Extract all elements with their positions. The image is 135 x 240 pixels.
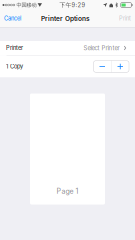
button[interactable]: Decrease number of copies — [93, 61, 111, 72]
button[interactable]: Printer — [0, 41, 135, 55]
staticText: 1 Copy — [6, 63, 23, 70]
staticText: 中国移动 — [16, 2, 36, 8]
button[interactable]: Increase number of copies — [111, 61, 129, 72]
button[interactable]: Print — [115, 10, 135, 27]
staticText: Page 1 — [56, 187, 78, 195]
staticText: Select Printer — [83, 44, 119, 52]
staticText: Cancel — [4, 15, 21, 22]
button[interactable]: Cancel — [0, 10, 25, 27]
staticText: Printer — [6, 44, 23, 51]
staticText: Printer Options — [41, 14, 90, 22]
staticText: 下午9:29 — [59, 1, 85, 9]
staticText: Print — [119, 15, 131, 22]
